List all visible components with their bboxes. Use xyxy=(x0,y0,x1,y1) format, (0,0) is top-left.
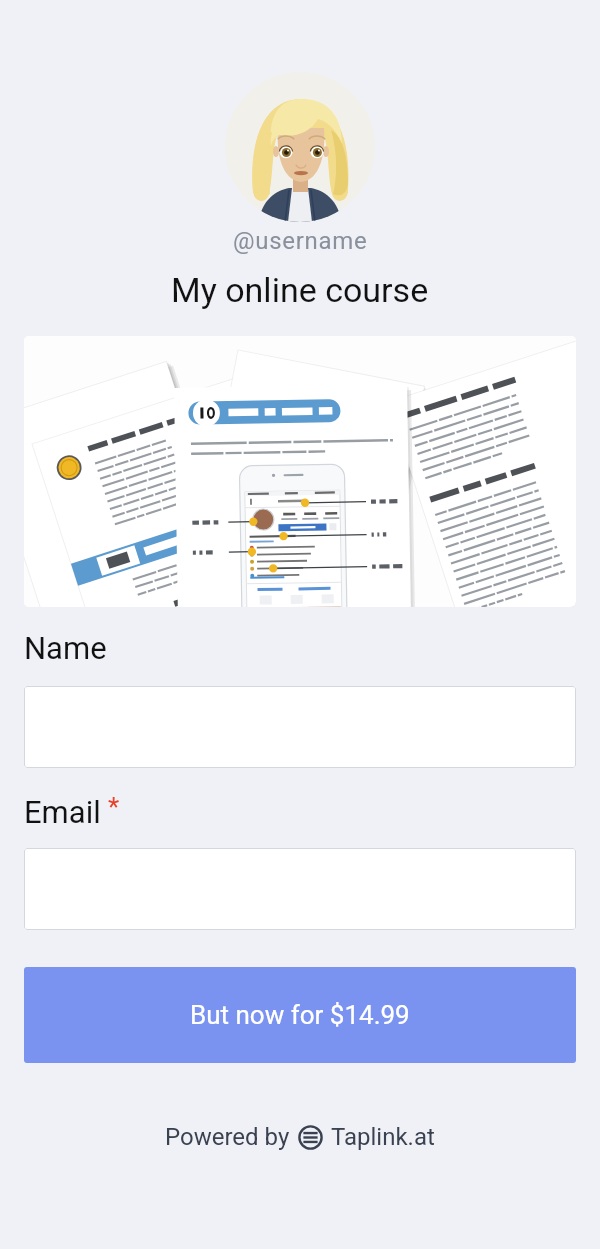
staticText: Taplink.at xyxy=(331,1123,435,1151)
staticText: @username xyxy=(233,227,368,255)
button[interactable]: Name input xyxy=(24,686,576,768)
button[interactable]: Email input xyxy=(24,848,576,930)
staticText: Email xyxy=(24,794,101,830)
staticText: Name xyxy=(24,630,107,666)
staticText: Powered by xyxy=(165,1123,290,1151)
button[interactable]: Powered by xyxy=(165,1123,435,1151)
staticText: But now for $14.99 xyxy=(190,1000,410,1030)
button[interactable]: But now for $14.99 xyxy=(24,967,576,1063)
staticText: * xyxy=(108,792,120,822)
staticText: My online course xyxy=(171,270,429,310)
